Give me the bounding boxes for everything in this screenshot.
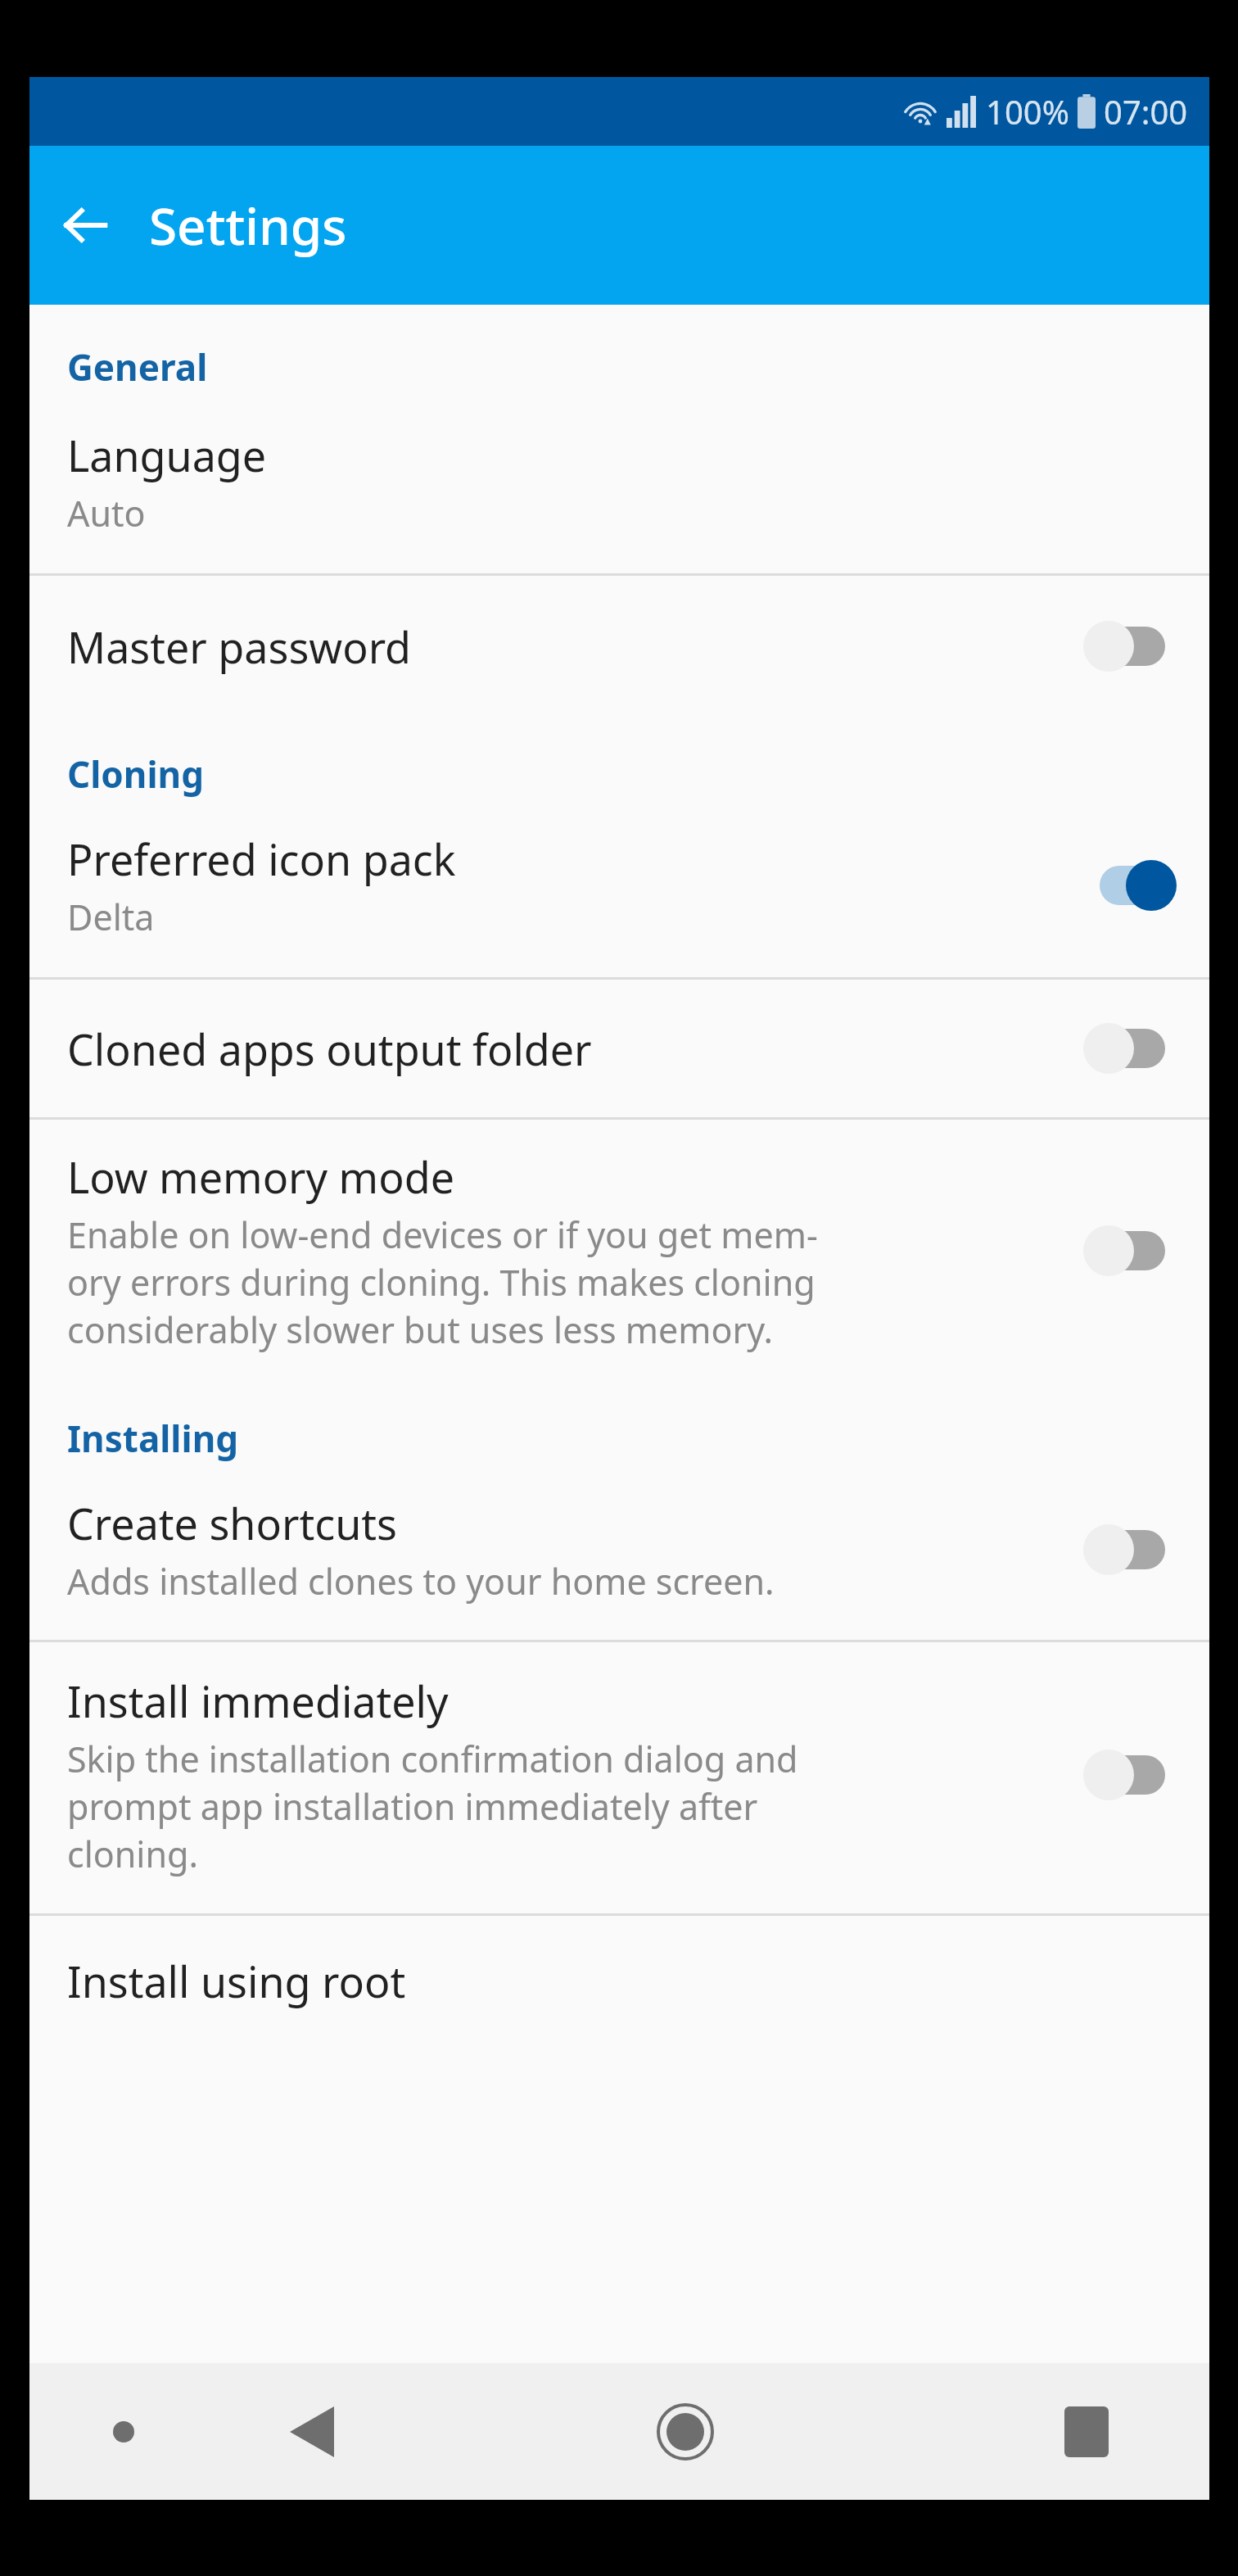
- button[interactable]: Back: [218, 2363, 406, 2500]
- staticText: Low memory mode: [67, 1148, 454, 1206]
- staticText: Master password: [67, 618, 412, 676]
- button[interactable]: More: [29, 2363, 218, 2500]
- button[interactable]: Home: [406, 2363, 964, 2500]
- staticText: Skip the installation confirmation dialo…: [67, 1735, 798, 1877]
- staticText: Settings: [149, 191, 347, 260]
- staticText: Adds installed clones to your home scree…: [67, 1557, 775, 1605]
- staticText: Cloning: [67, 749, 205, 799]
- staticText: Install immediately: [67, 1672, 449, 1730]
- staticText: Cloned apps output folder: [67, 1020, 592, 1078]
- staticText: Install using root: [67, 1952, 406, 2010]
- staticText: Installing: [67, 1414, 239, 1463]
- staticText: Auto: [67, 489, 146, 537]
- staticText: 07:00: [1104, 89, 1188, 134]
- button[interactable]: Back: [46, 186, 124, 265]
- staticText: Language: [67, 426, 267, 484]
- button[interactable]: Install immediately: [29, 1642, 1209, 1913]
- staticText: Create shortcuts: [67, 1494, 397, 1552]
- staticText: Enable on low-end devices or if you get …: [67, 1211, 818, 1353]
- button[interactable]: Cloned apps output folder: [29, 980, 1209, 1117]
- button[interactable]: Preferred icon pack: [29, 812, 1209, 977]
- staticText: Delta: [67, 893, 155, 941]
- button[interactable]: Master password: [29, 576, 1209, 717]
- staticText: 100%: [986, 89, 1069, 134]
- button[interactable]: Create shortcuts: [29, 1476, 1209, 1640]
- staticText: Preferred icon pack: [67, 830, 456, 888]
- button[interactable]: Recents: [964, 2363, 1209, 2500]
- button[interactable]: Install using root: [29, 1916, 1209, 2010]
- button[interactable]: Low memory mode: [29, 1120, 1209, 1386]
- staticText: General: [67, 342, 208, 392]
- button[interactable]: Language: [29, 406, 1209, 573]
